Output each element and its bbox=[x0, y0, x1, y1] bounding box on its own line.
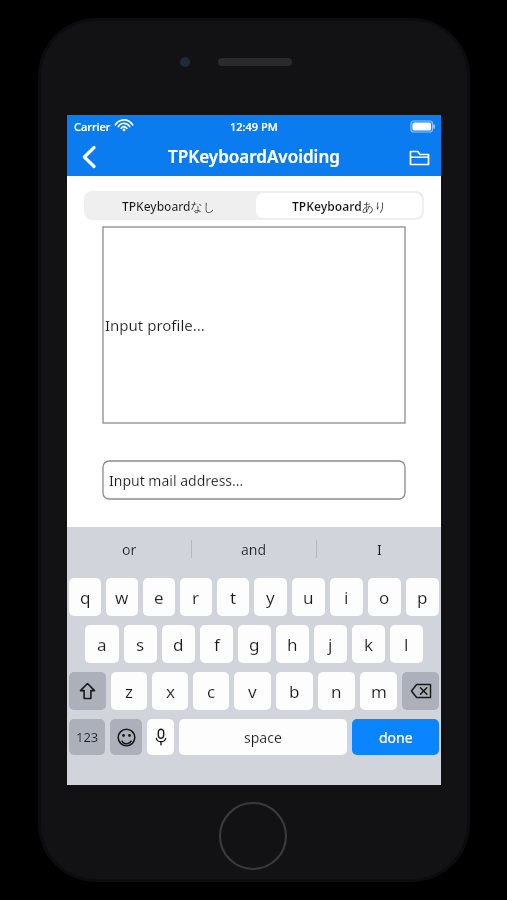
button[interactable]: j bbox=[314, 625, 347, 663]
button[interactable]: Back bbox=[67, 137, 111, 176]
button[interactable]: f bbox=[200, 625, 233, 663]
button[interactable]: w bbox=[106, 578, 138, 616]
button[interactable]: h bbox=[276, 625, 309, 663]
button[interactable]: x bbox=[152, 672, 188, 710]
button[interactable]: r bbox=[180, 578, 212, 616]
staticText: f bbox=[214, 633, 220, 656]
button[interactable]: v bbox=[234, 672, 271, 710]
staticText: 123 bbox=[76, 728, 99, 746]
button[interactable]: or bbox=[67, 527, 191, 571]
staticText: TPKeyboardAvoiding bbox=[168, 145, 340, 168]
staticText: b bbox=[289, 680, 300, 703]
button[interactable]: y bbox=[254, 578, 287, 616]
button[interactable]: Delete bbox=[402, 672, 439, 710]
staticText: k bbox=[364, 633, 374, 656]
staticText: o bbox=[379, 586, 390, 609]
button[interactable]: c bbox=[193, 672, 229, 710]
button[interactable]: TPKeyboardあり bbox=[256, 193, 422, 218]
button[interactable]: Emoji bbox=[110, 719, 142, 755]
staticText: i bbox=[344, 586, 349, 609]
staticText: or bbox=[122, 540, 137, 559]
staticText: p bbox=[417, 586, 428, 609]
staticText: j bbox=[328, 633, 333, 656]
button[interactable]: m bbox=[360, 672, 397, 710]
button[interactable]: l bbox=[390, 625, 423, 663]
staticText: space bbox=[244, 728, 282, 747]
button[interactable]: u bbox=[292, 578, 325, 616]
button[interactable]: o bbox=[368, 578, 401, 616]
button[interactable]: TPKeyboardなし bbox=[84, 191, 254, 220]
staticText: v bbox=[248, 680, 257, 703]
staticText: u bbox=[303, 586, 314, 609]
staticText: q bbox=[80, 586, 91, 609]
staticText: 12:49 PM bbox=[230, 119, 278, 134]
staticText: r bbox=[192, 586, 200, 609]
button[interactable]: Shift bbox=[69, 672, 106, 710]
button[interactable]: t bbox=[217, 578, 249, 616]
button[interactable]: z bbox=[111, 672, 147, 710]
button[interactable]: a bbox=[85, 625, 119, 663]
button[interactable]: n bbox=[318, 672, 355, 710]
button[interactable]: Input mail address... bbox=[103, 461, 405, 499]
button[interactable]: k bbox=[352, 625, 385, 663]
staticText: n bbox=[331, 680, 342, 703]
button[interactable]: e bbox=[143, 578, 175, 616]
button[interactable]: q bbox=[69, 578, 101, 616]
staticText: TPKeyboardなし bbox=[122, 198, 216, 214]
staticText: h bbox=[287, 633, 298, 656]
staticText: d bbox=[173, 633, 184, 656]
staticText: I bbox=[377, 540, 382, 559]
staticText: l bbox=[404, 633, 409, 656]
staticText: y bbox=[266, 586, 275, 609]
staticText: g bbox=[249, 633, 260, 656]
button[interactable]: i bbox=[330, 578, 363, 616]
button[interactable]: 123 bbox=[69, 719, 105, 755]
staticText: z bbox=[125, 680, 133, 703]
staticText: t bbox=[230, 586, 237, 609]
staticText: w bbox=[115, 586, 129, 609]
staticText: c bbox=[207, 680, 216, 703]
staticText: x bbox=[166, 680, 175, 703]
staticText: done bbox=[379, 728, 413, 747]
staticText: Carrier bbox=[74, 119, 111, 134]
button[interactable]: b bbox=[276, 672, 313, 710]
staticText: Input mail address... bbox=[109, 471, 244, 490]
button[interactable]: Dictation bbox=[147, 719, 174, 755]
button[interactable]: p bbox=[406, 578, 439, 616]
staticText: and bbox=[241, 540, 267, 559]
button[interactable]: space bbox=[179, 719, 347, 755]
staticText: m bbox=[371, 680, 387, 703]
staticText: TPKeyboardあり bbox=[292, 198, 387, 214]
staticText: e bbox=[154, 586, 164, 609]
button[interactable]: d bbox=[162, 625, 195, 663]
button[interactable]: g bbox=[238, 625, 271, 663]
button[interactable]: I bbox=[317, 527, 441, 571]
staticText: Input profile... bbox=[105, 315, 205, 335]
button[interactable]: s bbox=[124, 625, 157, 663]
button[interactable]: done bbox=[352, 719, 439, 755]
staticText: s bbox=[136, 633, 145, 656]
staticText: a bbox=[97, 633, 107, 656]
button[interactable]: and bbox=[192, 527, 316, 571]
button[interactable]: Input profile... bbox=[103, 227, 405, 423]
button[interactable]: Folder bbox=[397, 137, 441, 176]
